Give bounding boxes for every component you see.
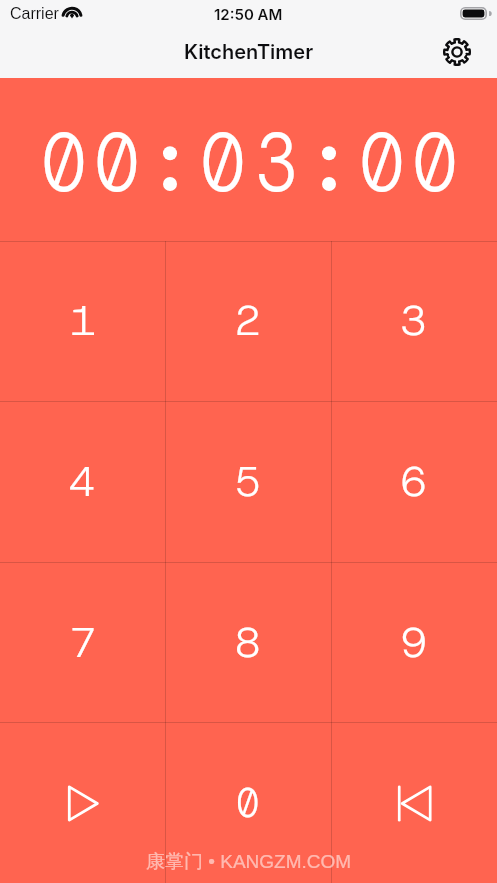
staticText: 3: [254, 109, 298, 217]
staticText: 6: [400, 453, 428, 509]
button[interactable]: 0: [165, 724, 331, 883]
button[interactable]: 5: [165, 402, 331, 563]
staticText: KitchenTimer: [184, 40, 314, 64]
button[interactable]: Settings: [440, 35, 474, 69]
button[interactable]: 2: [165, 241, 331, 402]
staticText: 8: [234, 614, 262, 670]
button[interactable]: 4: [0, 402, 165, 563]
staticText: 0: [42, 109, 86, 217]
staticText: 1: [69, 292, 97, 348]
staticText: 0: [95, 109, 139, 217]
staticText: 0: [201, 109, 245, 217]
button[interactable]: 1: [0, 241, 165, 402]
staticText: 3: [400, 292, 428, 348]
button[interactable]: Start timer: [0, 724, 165, 883]
staticText: 9: [400, 614, 428, 670]
button[interactable]: 3: [331, 241, 497, 402]
staticText: 12:50 AM: [214, 5, 283, 23]
staticText: 7: [69, 614, 97, 670]
staticText: 5: [234, 453, 262, 509]
button[interactable]: 8: [165, 563, 331, 724]
staticText: 0: [413, 109, 457, 217]
staticText: 4: [69, 453, 97, 509]
staticText: 0: [360, 109, 404, 217]
staticText: 2: [234, 292, 262, 348]
staticText: 康掌门 • KANGZM.COM: [146, 850, 352, 874]
button[interactable]: Reset timer: [331, 724, 497, 883]
button[interactable]: 9: [331, 563, 497, 724]
staticText: Carrier: [10, 5, 59, 23]
button[interactable]: 6: [331, 402, 497, 563]
button[interactable]: 7: [0, 563, 165, 724]
staticText: 0: [237, 775, 259, 830]
